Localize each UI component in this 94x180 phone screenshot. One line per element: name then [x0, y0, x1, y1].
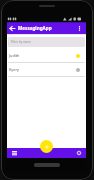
staticText: MessagingApp	[18, 25, 52, 31]
staticText: Kyery	[9, 67, 19, 72]
button[interactable]: Filter by name	[8, 37, 85, 47]
button[interactable]	[34, 163, 60, 167]
button[interactable]: Kyery	[7, 63, 86, 77]
staticText: Judith	[9, 53, 20, 58]
button[interactable]	[11, 150, 17, 156]
button[interactable]	[8, 24, 16, 32]
button[interactable]: Judith	[7, 49, 86, 63]
button[interactable]	[40, 140, 53, 153]
staticText: Filter by name	[11, 40, 32, 44]
button[interactable]	[76, 150, 82, 156]
button[interactable]	[75, 24, 84, 33]
